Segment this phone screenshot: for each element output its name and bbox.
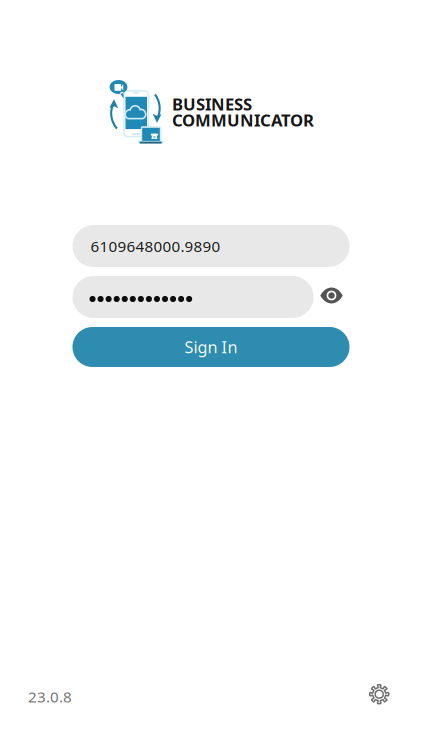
staticText: 6109648000.9890 <box>90 236 220 256</box>
button[interactable]: Sign In <box>72 327 349 367</box>
button[interactable]: Settings <box>360 679 392 709</box>
staticText: Sign In <box>184 336 237 358</box>
staticText: BUSINESS <box>172 93 252 115</box>
staticText: COMMUNICATOR <box>172 109 314 131</box>
button[interactable]: Show password <box>313 276 349 318</box>
staticText: 23.0.8 <box>28 686 72 707</box>
